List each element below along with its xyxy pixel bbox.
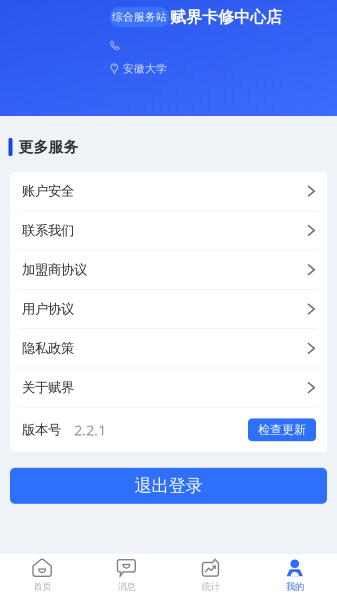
staticText: 关于赋界 bbox=[22, 379, 74, 396]
staticText: 账户安全 bbox=[22, 183, 74, 199]
button[interactable]: 退出登录 bbox=[10, 468, 327, 504]
button[interactable]: 统计 bbox=[168, 554, 253, 600]
button[interactable]: 首页 bbox=[0, 554, 84, 600]
button[interactable]: 加盟商协议 bbox=[10, 251, 327, 290]
staticText: 消息 bbox=[117, 581, 135, 592]
button[interactable]: 联系我们 bbox=[10, 211, 327, 251]
button[interactable]: 检查更新 bbox=[248, 418, 316, 441]
staticText: 退出登录 bbox=[134, 475, 202, 496]
button[interactable]: 消息 bbox=[84, 554, 168, 600]
staticText: 赋界卡修中心店 bbox=[170, 7, 282, 27]
button[interactable]: 隐私政策 bbox=[10, 329, 327, 368]
staticText: 版本号 bbox=[22, 422, 61, 438]
staticText: 统计 bbox=[202, 581, 220, 592]
staticText: 联系我们 bbox=[22, 222, 74, 239]
staticText: 更多服务 bbox=[18, 138, 78, 156]
staticText: 2.2.1 bbox=[74, 420, 106, 440]
button[interactable]: 我的 bbox=[253, 554, 337, 600]
staticText: 我的 bbox=[286, 581, 304, 592]
staticText: 检查更新 bbox=[258, 422, 306, 437]
staticText: 隐私政策 bbox=[22, 340, 74, 357]
staticText: 用户协议 bbox=[22, 301, 74, 317]
staticText: 加盟商协议 bbox=[22, 262, 87, 278]
staticText: 安徽大学 bbox=[123, 62, 167, 75]
staticText: 综合服务站 bbox=[112, 10, 167, 24]
staticText: 首页 bbox=[33, 581, 51, 592]
button[interactable]: 账户安全 bbox=[10, 172, 327, 211]
button[interactable]: 用户协议 bbox=[10, 290, 327, 329]
button[interactable]: 关于赋界 bbox=[10, 368, 327, 408]
